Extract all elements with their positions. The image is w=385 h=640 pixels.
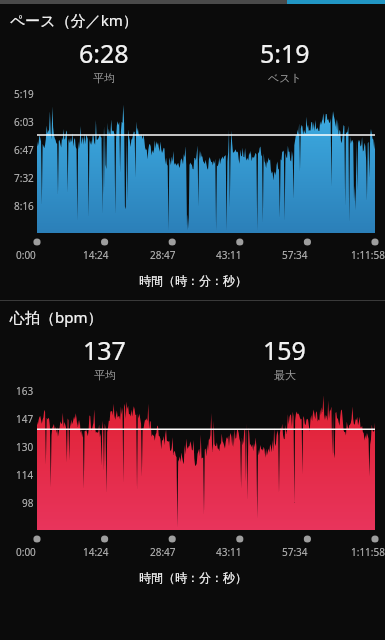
staticText: 57:34 [282,545,308,559]
button[interactable]: 5:19 [194,36,375,85]
staticText: 時間（時：分：秒） [139,570,247,585]
staticText: 163 [16,384,34,398]
staticText: 6:47 [14,143,34,157]
staticText: 147 [16,412,34,426]
staticText: 平均 [93,71,115,85]
staticText: 28:47 [150,545,176,559]
button[interactable]: 6:28 [14,36,194,85]
staticText: 最大 [274,368,296,382]
staticText: 0:00 [16,545,36,559]
staticText: 時間（時：分：秒） [139,273,247,288]
staticText: 平均 [94,368,116,382]
staticText: ペース（分／km） [10,10,138,30]
staticText: 14:24 [83,545,109,559]
staticText: 43:11 [216,545,242,559]
staticText: 1:11:58 [351,248,385,262]
staticText: 0:00 [16,248,36,262]
button[interactable]: 137 [14,333,194,382]
staticText: 28:47 [150,248,176,262]
button[interactable]: 159 [194,333,375,382]
staticText: 6:03 [14,115,34,129]
staticText: 6:28 [79,36,129,70]
staticText: 5:19 [260,36,310,70]
staticText: 5:19 [14,87,34,101]
staticText: 57:34 [282,248,308,262]
staticText: ベスト [268,71,302,85]
staticText: 137 [83,333,126,367]
staticText: 8:16 [14,199,34,213]
staticText: 1:11:58 [351,545,385,559]
staticText: 130 [16,440,34,454]
staticText: 43:11 [216,248,242,262]
staticText: 98 [22,496,34,510]
staticText: 159 [263,333,306,367]
staticText: 114 [16,468,34,482]
staticText: 7:32 [14,171,34,185]
staticText: 14:24 [83,248,109,262]
staticText: 心拍（bpm） [10,307,103,327]
